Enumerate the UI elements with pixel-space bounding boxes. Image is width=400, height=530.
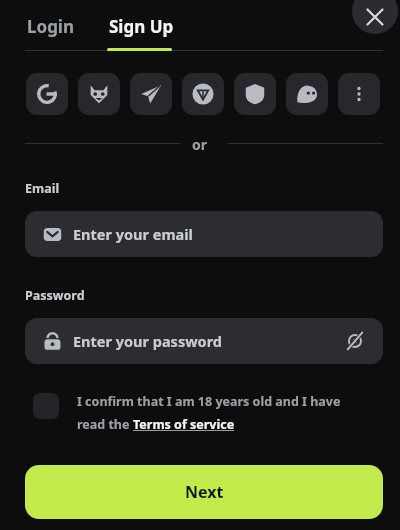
- staticText: Sign Up: [109, 15, 174, 38]
- button[interactable]: Show password: [343, 329, 367, 353]
- button[interactable]: Close: [352, 0, 398, 34]
- staticText: Enter your password: [73, 331, 223, 351]
- button[interactable]: Terms of service: [133, 416, 235, 433]
- button[interactable]: Confirm age checkbox: [33, 393, 59, 419]
- button[interactable]: Sign in with Telegram: [130, 73, 172, 115]
- staticText: Enter your email: [73, 224, 193, 244]
- button[interactable]: Sign Up: [107, 11, 176, 42]
- button[interactable]: Sign in with TON: [182, 73, 224, 115]
- button[interactable]: Sign in with Google: [26, 73, 68, 115]
- button[interactable]: Sign in with MetaMask: [78, 73, 120, 115]
- button[interactable]: Login: [25, 11, 77, 42]
- button[interactable]: Next: [25, 465, 383, 519]
- staticText: Password: [25, 287, 85, 304]
- staticText: read the: [77, 416, 133, 433]
- staticText: Next: [185, 481, 224, 503]
- button[interactable]: Enter your email: [25, 211, 383, 257]
- button[interactable]: More options: [338, 73, 380, 115]
- button[interactable]: Enter your password: [25, 318, 383, 364]
- button[interactable]: Sign in with Shield wallet: [234, 73, 276, 115]
- staticText: I confirm that I am 18 years old and I h…: [77, 393, 341, 410]
- staticText: Terms of service: [133, 416, 235, 433]
- staticText: Email: [25, 180, 60, 197]
- staticText: or: [192, 135, 208, 154]
- staticText: Login: [27, 15, 75, 38]
- button[interactable]: Sign in with Phantom: [286, 73, 328, 115]
